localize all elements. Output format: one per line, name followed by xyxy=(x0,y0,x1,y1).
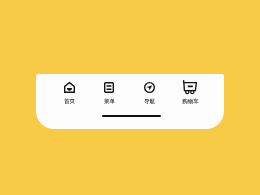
staticText: 首页 xyxy=(64,98,75,105)
staticText: 菜单 xyxy=(104,98,115,105)
staticText: 导航 xyxy=(144,98,155,105)
button[interactable]: Home gesture bar xyxy=(102,115,161,117)
other: Navigation xyxy=(144,82,155,93)
button[interactable]: Home xyxy=(52,80,86,105)
button[interactable]: Menu xyxy=(92,80,126,105)
button[interactable]: Navigation xyxy=(132,80,166,105)
other: Home xyxy=(64,82,75,93)
button[interactable]: Shopping cart xyxy=(173,80,207,105)
other: Menu xyxy=(104,82,114,93)
staticText: 导航 xyxy=(144,98,155,105)
staticText: 购物车 xyxy=(182,98,199,105)
staticText: 购物车 xyxy=(182,98,199,105)
staticText: 菜单 xyxy=(104,98,115,105)
staticText: 首页 xyxy=(64,98,75,105)
other: Shopping cart xyxy=(183,80,197,93)
